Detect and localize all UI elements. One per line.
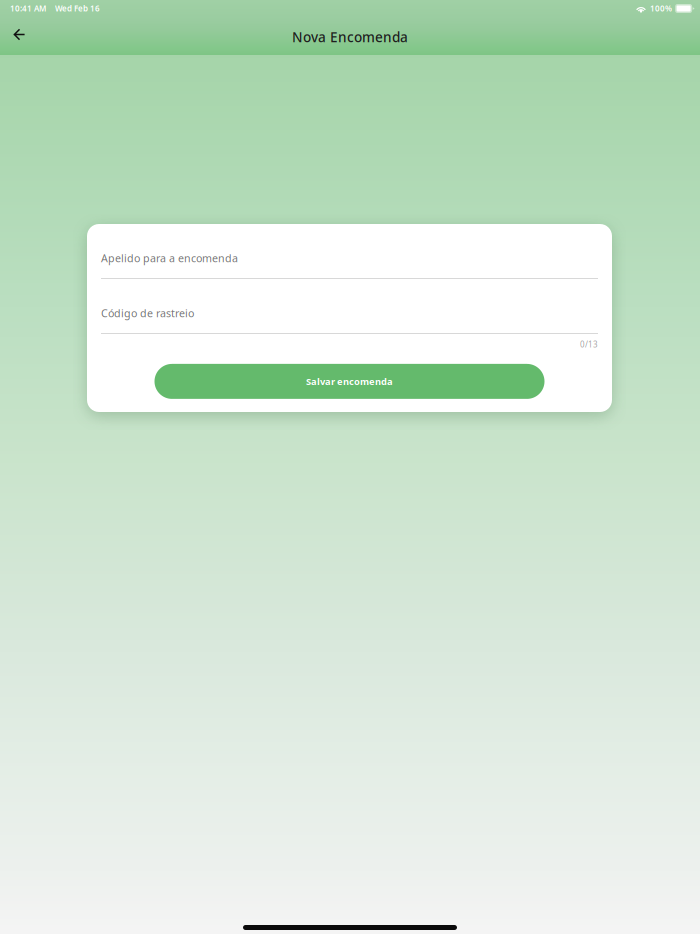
staticText: Wed Feb 16 [55, 3, 100, 14]
staticText: 0/13 [580, 339, 598, 350]
staticText: Código de rastreio [101, 306, 194, 320]
button[interactable]: Back [0, 19, 39, 54]
staticText: Apelido para a encomenda [101, 251, 238, 265]
staticText: Salvar encomenda [306, 375, 393, 388]
staticText: 10:41 AM [10, 3, 46, 14]
button[interactable]: Salvar encomenda [154, 364, 544, 399]
staticText: 100% [650, 3, 672, 14]
staticText: Nova Encomenda [292, 28, 408, 46]
